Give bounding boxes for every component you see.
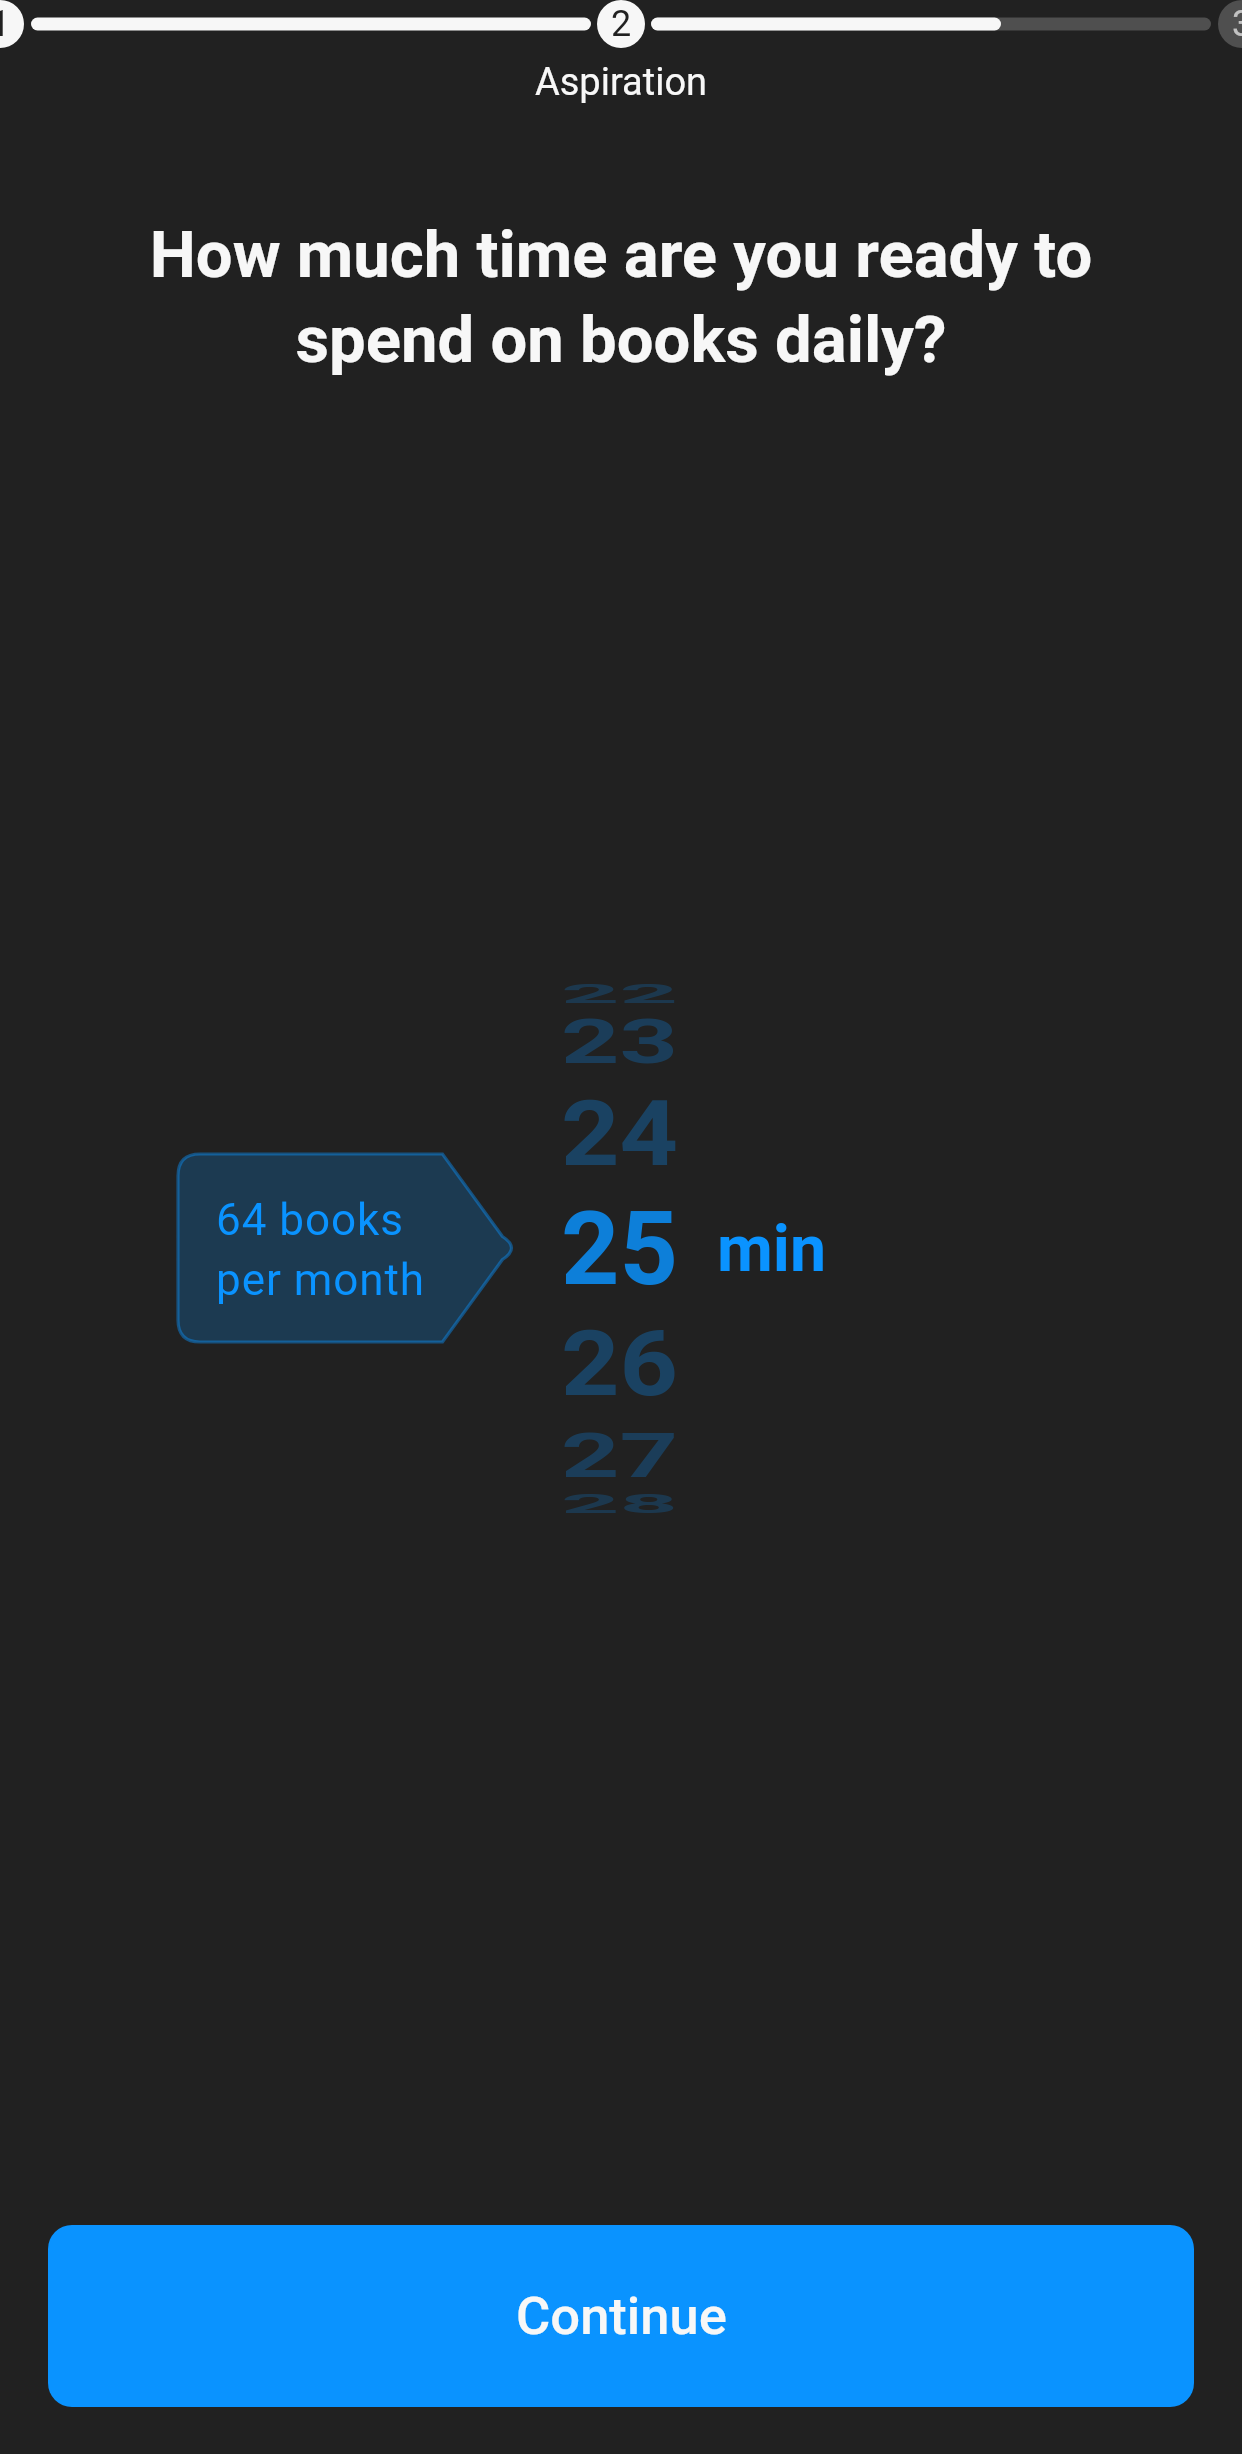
staticText: How much time are you ready to spend on … xyxy=(98,217,1144,377)
staticText: 28 xyxy=(561,1488,679,1520)
button[interactable]: 22 xyxy=(470,919,770,1069)
staticText: 2 xyxy=(611,3,632,45)
staticText: 1 xyxy=(0,3,11,45)
button[interactable]: 23 xyxy=(470,967,770,1117)
staticText: Aspiration xyxy=(0,60,1242,105)
button[interactable]: 28 xyxy=(470,1429,770,1579)
staticText: 25 xyxy=(561,1189,679,1309)
staticText: 24 xyxy=(561,1080,679,1188)
button[interactable]: 24 xyxy=(470,1059,770,1209)
staticText: per month xyxy=(216,1254,426,1306)
staticText: 3 xyxy=(1232,3,1242,45)
staticText: 22 xyxy=(561,978,679,1010)
staticText: 64 books xyxy=(216,1194,404,1246)
staticText: 26 xyxy=(561,1310,679,1418)
button[interactable]: Step 3 xyxy=(1218,0,1242,48)
staticText: Continue xyxy=(516,2285,727,2347)
button[interactable]: 25 xyxy=(470,1174,770,1324)
staticText: 23 xyxy=(561,1006,679,1078)
staticText: 27 xyxy=(561,1420,679,1492)
button[interactable]: 26 xyxy=(470,1289,770,1439)
button[interactable]: Step 2, current xyxy=(597,0,645,48)
button[interactable]: Continue xyxy=(48,2225,1194,2407)
button[interactable]: Step 1 completed xyxy=(0,0,24,48)
button[interactable]: 27 xyxy=(470,1381,770,1531)
staticText: min xyxy=(717,1211,827,1287)
